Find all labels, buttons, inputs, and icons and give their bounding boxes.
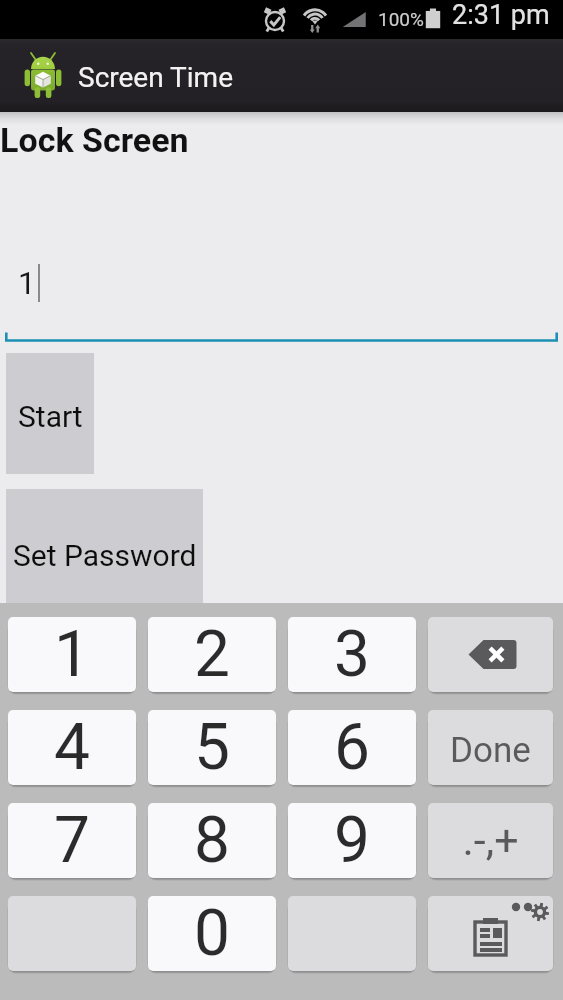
button[interactable]: 7: [8, 803, 136, 878]
button[interactable]: Start: [6, 353, 94, 474]
button[interactable]: 9: [288, 803, 416, 878]
button[interactable]: 4: [8, 710, 136, 785]
other: Backspace: [428, 617, 553, 692]
button[interactable]: 2: [148, 617, 276, 692]
staticText: Done: [450, 730, 531, 771]
staticText: Screen Time: [78, 61, 233, 94]
button[interactable]: [428, 896, 553, 971]
button[interactable]: 8: [148, 803, 276, 878]
staticText: 1: [54, 617, 90, 692]
button[interactable]: 5: [148, 710, 276, 785]
staticText: Set Password: [13, 538, 197, 573]
button[interactable]: 6: [288, 710, 416, 785]
staticText: 4: [54, 710, 90, 785]
staticText: 1: [18, 265, 36, 301]
staticText: 6: [334, 710, 370, 785]
staticText: 7: [54, 803, 90, 878]
button[interactable]: Done: [428, 710, 553, 785]
other: Clipboard: [428, 896, 553, 971]
staticText: Start: [18, 399, 83, 434]
staticText: Lock Screen: [0, 120, 189, 160]
button[interactable]: [428, 617, 553, 692]
staticText: 2:31 pm: [452, 0, 550, 31]
button[interactable]: .-,+: [428, 803, 553, 878]
staticText: 2: [194, 617, 230, 692]
staticText: 8: [194, 803, 230, 878]
staticText: 100%: [378, 8, 424, 30]
staticText: .-,+: [462, 815, 519, 865]
staticText: 0: [194, 896, 230, 971]
staticText: 5: [194, 710, 230, 785]
staticText: 3: [334, 617, 370, 692]
button[interactable]: 1: [8, 617, 136, 692]
button[interactable]: Set Password: [6, 489, 203, 610]
button[interactable]: 0: [148, 896, 276, 971]
button[interactable]: 3: [288, 617, 416, 692]
staticText: 9: [334, 803, 370, 878]
